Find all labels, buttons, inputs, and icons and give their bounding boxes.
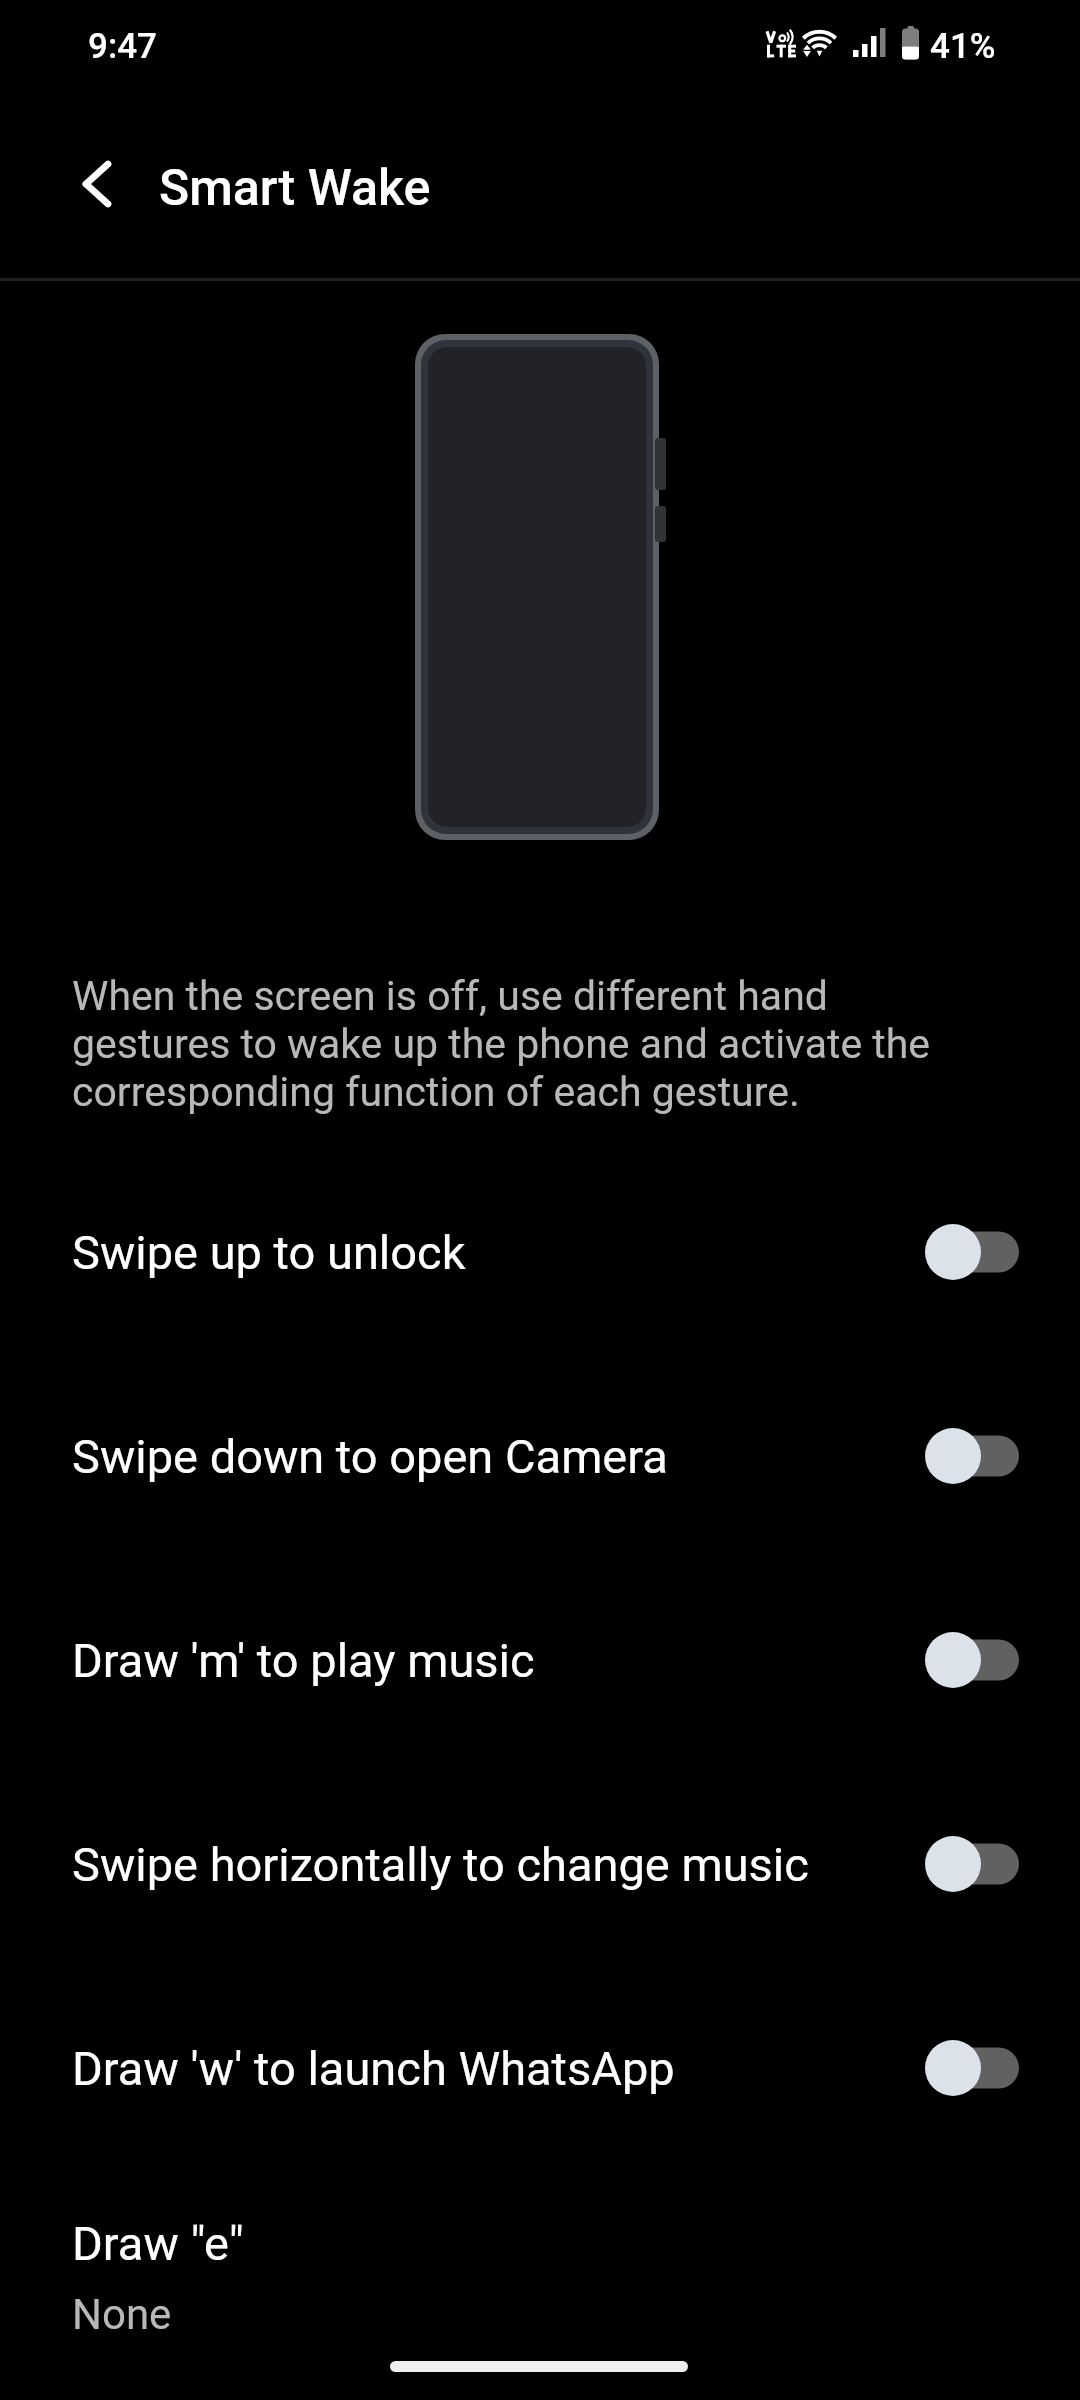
button[interactable]: Back (47, 134, 147, 234)
staticText: Swipe up to unlock (72, 1225, 466, 1280)
button[interactable]: Swipe horizontally to change music (0, 1774, 1080, 1954)
staticText: None (72, 2290, 172, 2339)
button[interactable]: Swipe down to open Camera (0, 1366, 1080, 1546)
button[interactable]: Draw 'm' to play music (0, 1570, 1080, 1750)
staticText: 41% (930, 26, 996, 67)
staticText: Draw 'm' to play music (72, 1633, 535, 1688)
staticText: Draw "e" (72, 2216, 244, 2271)
staticText: Draw 'w' to launch WhatsApp (72, 2041, 675, 2096)
staticText: Swipe down to open Camera (72, 1429, 668, 1484)
button[interactable]: Draw 'w' to launch WhatsApp (0, 1978, 1080, 2158)
staticText: 9:47 (88, 26, 157, 67)
button[interactable]: Swipe up to unlock (0, 1162, 1080, 1342)
staticText: Swipe horizontally to change music (72, 1837, 809, 1892)
staticText: Smart Wake (159, 159, 431, 218)
staticText: When the screen is off, use different ha… (72, 972, 962, 1116)
button[interactable]: Draw "e" (0, 2200, 1080, 2360)
